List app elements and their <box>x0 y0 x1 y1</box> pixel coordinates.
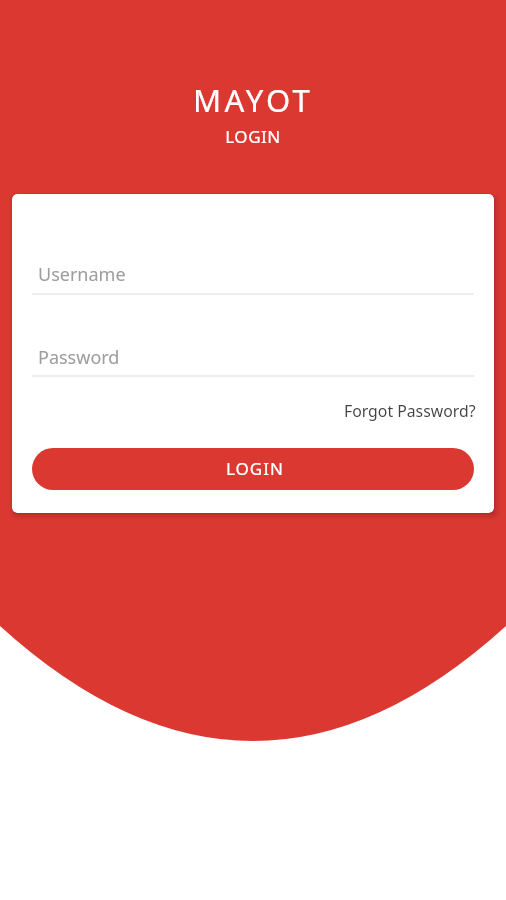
staticText: Username <box>38 262 126 287</box>
button[interactable]: Password <box>32 331 474 377</box>
staticText: LOGIN <box>0 125 506 148</box>
staticText: MAYOT <box>0 79 506 121</box>
button[interactable]: Login <box>32 448 474 490</box>
staticText: Password <box>38 345 120 370</box>
button[interactable]: Username <box>32 249 474 295</box>
button[interactable]: Forgot Password? <box>344 400 476 422</box>
staticText: LOGIN <box>226 457 284 480</box>
